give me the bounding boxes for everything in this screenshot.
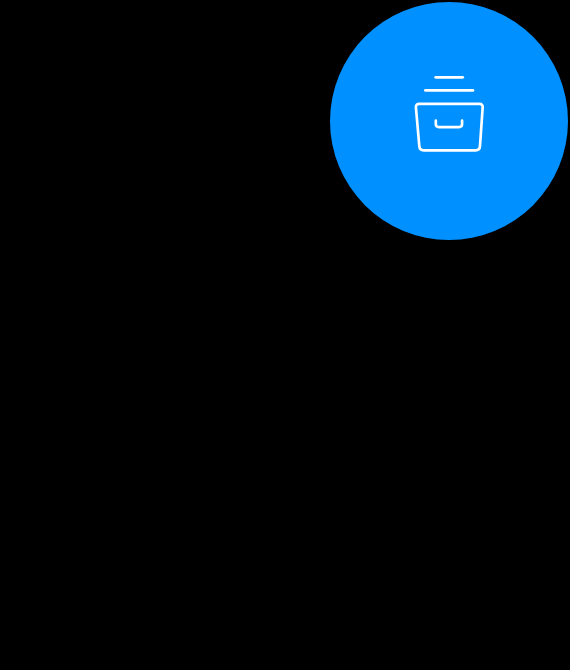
button[interactable]: Archive	[330, 2, 568, 240]
